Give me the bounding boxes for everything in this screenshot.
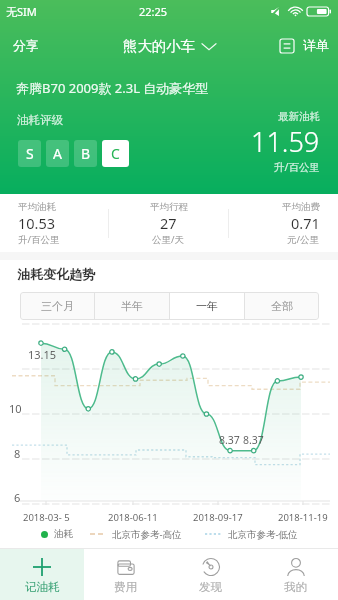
- button[interactable]: 发现: [168, 549, 253, 600]
- staticText: 油耗评级: [17, 113, 63, 127]
- staticText: 最新油耗: [278, 110, 320, 123]
- staticText: 升/百公里: [274, 160, 320, 174]
- staticText: 13.15: [28, 347, 57, 362]
- staticText: 8.37: [219, 433, 240, 447]
- button[interactable]: 全部: [245, 292, 319, 320]
- staticText: 发现: [199, 580, 223, 595]
- staticText: 费用: [114, 580, 138, 595]
- button[interactable]: A: [46, 140, 69, 167]
- staticText: 2018-06-11: [108, 511, 158, 524]
- staticText: 平均行程: [150, 201, 188, 213]
- staticText: 2018-09-17: [193, 511, 243, 524]
- staticText: 22:25: [139, 4, 168, 19]
- staticText: 2018-11-19: [278, 511, 328, 524]
- staticText: 8: [14, 446, 21, 461]
- staticText: 油耗变化趋势: [17, 266, 95, 282]
- button[interactable]: 半年: [95, 292, 169, 320]
- staticText: 元/公里: [287, 233, 320, 246]
- staticText: 公里/天: [152, 233, 185, 246]
- staticText: 一年: [196, 299, 218, 313]
- button[interactable]: 平均油耗: [18, 194, 112, 252]
- button[interactable]: 平均行程: [112, 194, 225, 252]
- button[interactable]: 详单: [280, 32, 329, 60]
- staticText: 全部: [271, 299, 293, 313]
- button[interactable]: B: [74, 140, 97, 167]
- button[interactable]: 记油耗: [0, 549, 84, 600]
- staticText: 分享: [13, 38, 39, 54]
- staticText: 北京市参考-低位: [228, 528, 298, 541]
- staticText: 6: [14, 490, 21, 505]
- staticText: 熊大的小车: [123, 37, 195, 55]
- staticText: 平均油耗: [18, 201, 56, 213]
- staticText: 北京市参考-高位: [112, 528, 182, 541]
- staticText: 27: [160, 213, 177, 233]
- button[interactable]: S: [18, 140, 41, 167]
- staticText: C: [111, 144, 120, 163]
- staticText: 详单: [303, 38, 329, 54]
- staticText: 无SIM: [6, 4, 37, 19]
- button[interactable]: 我的: [253, 549, 338, 600]
- staticText: 升/百公里: [18, 233, 60, 246]
- staticText: 奔腾B70 2009款 2.3L 自动豪华型: [16, 79, 209, 97]
- staticText: 2018-03- 5: [23, 511, 70, 524]
- button[interactable]: 费用: [84, 549, 168, 600]
- staticText: 10: [9, 401, 22, 416]
- staticText: A: [53, 144, 62, 163]
- staticText: 8.37: [243, 433, 264, 447]
- staticText: 10.53: [18, 213, 56, 233]
- button[interactable]: 三个月: [20, 292, 94, 320]
- button[interactable]: C: [102, 140, 129, 167]
- button[interactable]: 平均油费: [225, 194, 320, 252]
- staticText: 油耗: [54, 528, 73, 540]
- other: 详单: [280, 39, 294, 53]
- staticText: 0.71: [291, 213, 320, 233]
- button[interactable]: 熊大的小车: [123, 32, 216, 60]
- staticText: 记油耗: [25, 580, 60, 595]
- staticText: 平均油费: [282, 201, 320, 213]
- staticText: 11.59: [251, 123, 320, 160]
- button[interactable]: 一年: [170, 292, 244, 320]
- staticText: 我的: [284, 580, 308, 595]
- staticText: 半年: [121, 299, 143, 313]
- staticText: S: [26, 144, 34, 163]
- staticText: B: [81, 144, 91, 163]
- staticText: 三个月: [41, 299, 74, 313]
- button[interactable]: 分享: [13, 32, 39, 60]
